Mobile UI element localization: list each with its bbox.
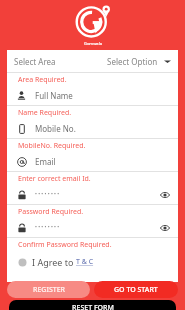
button[interactable]: RESET FORM: [9, 300, 176, 310]
button[interactable]: GO TO START: [94, 281, 178, 298]
button[interactable]: Mobile No.: [7, 119, 178, 138]
staticText: T & C: [76, 257, 94, 267]
staticText: Email: [35, 156, 56, 167]
button[interactable]: Show password: [159, 189, 170, 200]
staticText: REGISTER: [33, 285, 65, 295]
button[interactable]: Show password: [159, 222, 170, 233]
staticText: Select Option: [107, 56, 158, 67]
button[interactable]: Full Name: [7, 86, 178, 105]
button[interactable]: Email: [7, 152, 178, 171]
staticText: Area Required.: [18, 75, 67, 85]
staticText: Password Required.: [18, 207, 84, 217]
staticText: GO TO START: [114, 285, 158, 295]
staticText: I Agree to: [32, 256, 76, 268]
staticText: MobileNo. Required.: [18, 141, 86, 151]
staticText: Enter correct email Id.: [18, 174, 91, 184]
staticText: Select Area: [14, 56, 56, 67]
staticText: Confirm Password Required.: [18, 240, 112, 250]
staticText: Mobile No.: [35, 123, 76, 134]
button[interactable]: Select Area: [7, 50, 178, 72]
staticText: • • • • • • • •: [35, 224, 60, 231]
staticText: Name Required.: [18, 108, 72, 118]
button[interactable]: • • • • • • • •: [7, 185, 178, 204]
staticText: • • • • • • • •: [35, 191, 60, 198]
button[interactable]: T & C: [76, 257, 94, 267]
staticText: Gomwala: [84, 41, 103, 46]
staticText: Full Name: [35, 90, 73, 101]
button[interactable]: • • • • • • • •: [7, 218, 178, 237]
staticText: RESET FORM: [72, 303, 114, 310]
button[interactable]: I Agree to: [7, 251, 178, 273]
button[interactable]: REGISTER: [7, 281, 90, 298]
